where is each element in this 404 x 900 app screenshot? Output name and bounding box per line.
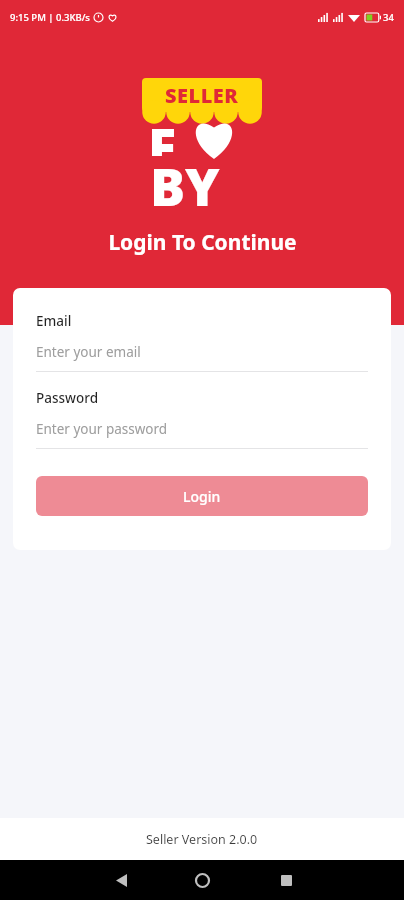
button[interactable]: Recent apps: [271, 860, 301, 900]
button[interactable]: Login: [36, 476, 368, 516]
staticText: SELLER: [165, 82, 239, 109]
staticText: Password: [36, 389, 99, 407]
staticText: Email: [36, 312, 72, 330]
staticText: 34: [383, 11, 394, 24]
staticText: F: [148, 110, 177, 156]
staticText: Seller Version 2.0.0: [146, 831, 258, 848]
staticText: BY: [150, 150, 220, 221]
button[interactable]: Home: [187, 860, 217, 900]
staticText: Enter your password: [36, 420, 168, 438]
staticText: Login: [183, 487, 221, 506]
button[interactable]: Enter your password: [36, 420, 368, 438]
staticText: 9:15 PM | 0.3KB/s: [10, 11, 90, 24]
staticText: Login To Continue: [108, 228, 297, 257]
staticText: Enter your email: [36, 343, 141, 361]
button[interactable]: Back: [106, 860, 136, 900]
button[interactable]: Enter your email: [36, 343, 368, 361]
